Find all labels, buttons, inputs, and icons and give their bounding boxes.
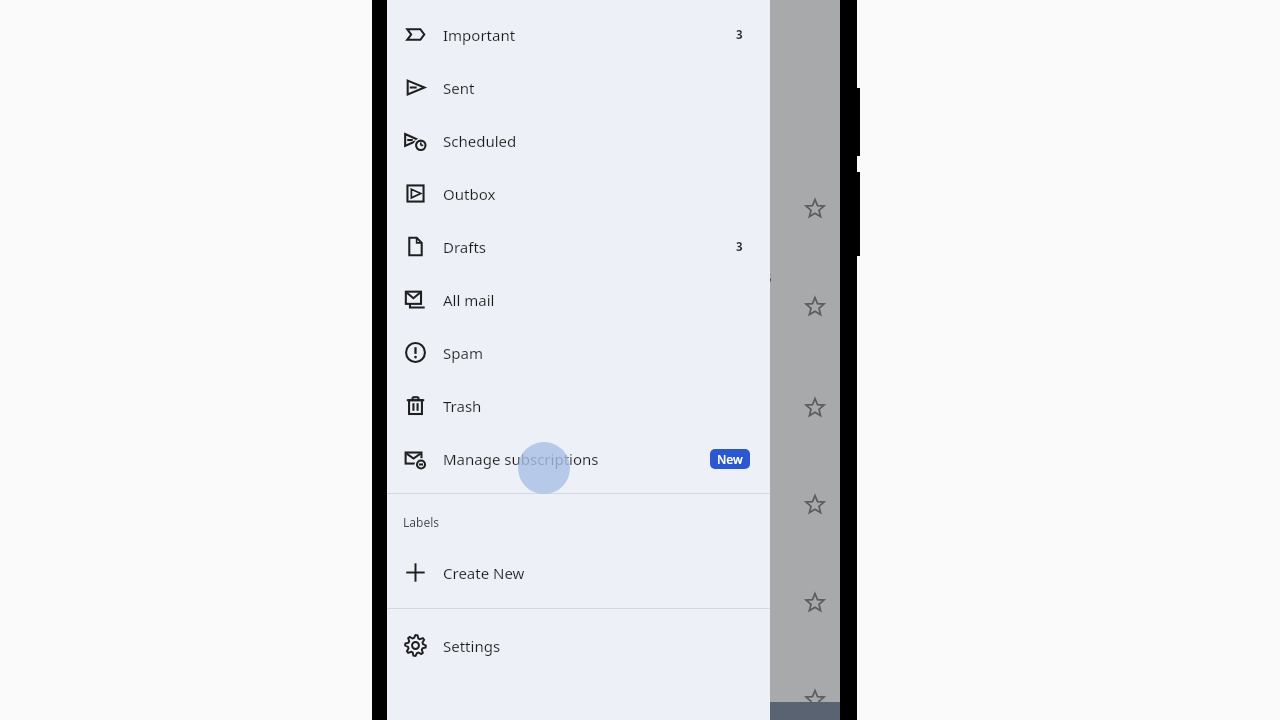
staticText: Labels xyxy=(403,514,440,530)
button[interactable]: Spam xyxy=(387,326,770,379)
staticText: 5435 xyxy=(742,269,772,287)
staticText: Settings xyxy=(443,636,501,656)
button[interactable]: Outbox xyxy=(387,167,770,220)
staticText: Outbox xyxy=(443,184,496,204)
button[interactable]: Create New xyxy=(387,546,770,599)
button[interactable]: Settings xyxy=(387,619,770,672)
staticText: 9:40 AM xyxy=(715,452,762,468)
staticText: Sent xyxy=(443,78,475,98)
staticText: Drafts xyxy=(443,237,487,257)
button[interactable]: All mail xyxy=(387,273,770,326)
button[interactable]: Scheduled xyxy=(387,114,770,167)
staticText: All mail xyxy=(443,290,495,310)
staticText: 3 xyxy=(736,27,743,43)
staticText: New xyxy=(717,451,743,467)
button[interactable]: Drafts xyxy=(387,220,770,273)
staticText: Create New xyxy=(443,563,525,583)
staticText: Spam xyxy=(443,343,483,363)
button[interactable]: Sent xyxy=(387,61,770,114)
button[interactable]: Important xyxy=(387,8,770,61)
staticText: Manage subscriptions xyxy=(443,449,599,469)
staticText: 3 xyxy=(736,239,743,255)
staticText: Scheduled xyxy=(443,131,517,151)
staticText: Trash xyxy=(443,396,482,416)
staticText: Important xyxy=(443,25,516,45)
button[interactable]: Trash xyxy=(387,379,770,432)
button[interactable]: Manage subscriptions xyxy=(387,432,770,485)
